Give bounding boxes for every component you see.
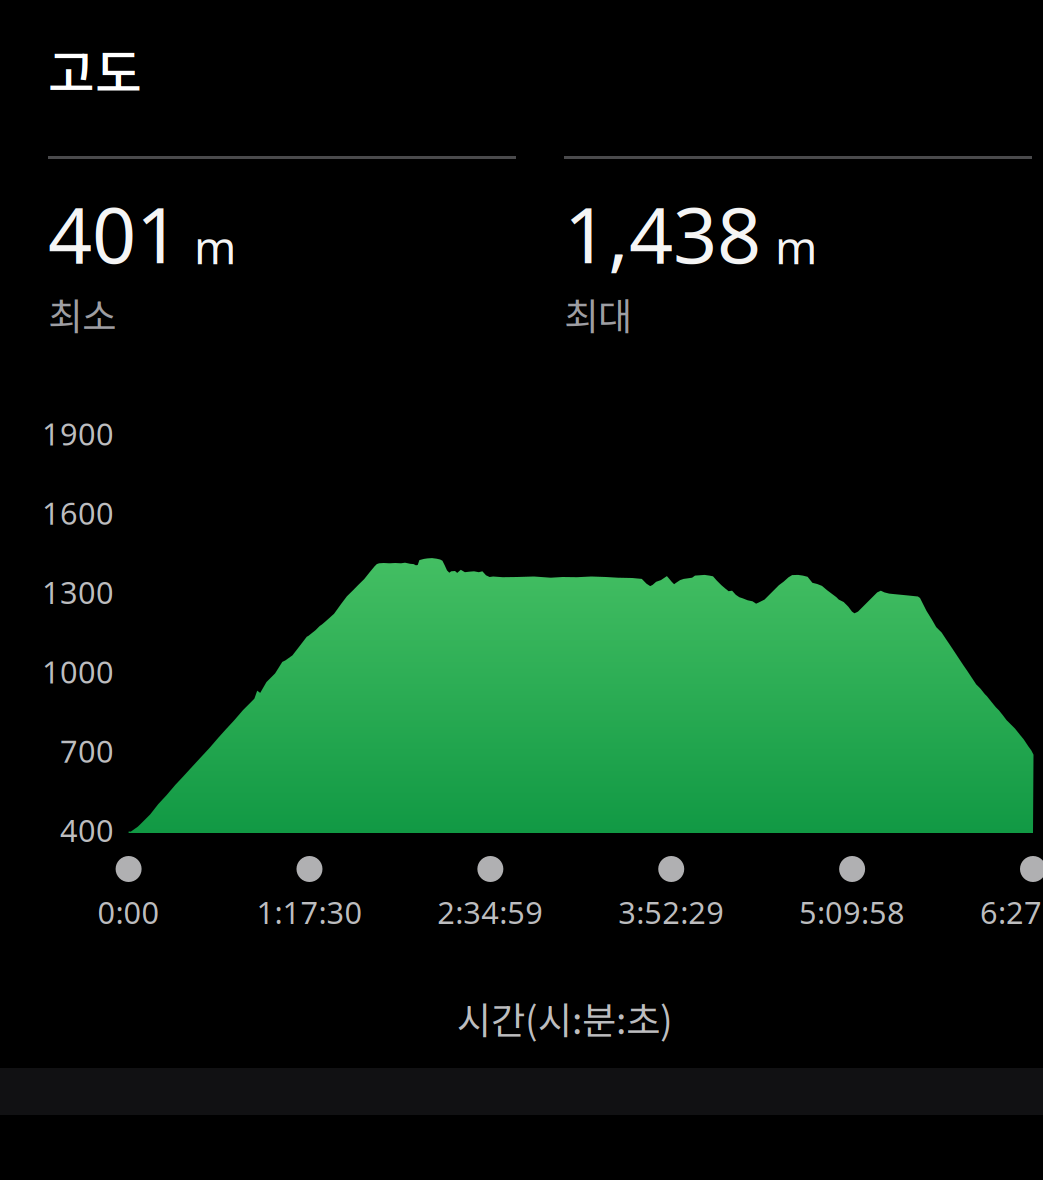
staticText: 0:00 (98, 892, 160, 932)
staticText: 고도 (48, 33, 142, 106)
staticText: 최소 (48, 287, 116, 341)
staticText: 1900 (42, 413, 114, 454)
staticText: m (194, 216, 236, 277)
staticText: 1:17:30 (256, 892, 362, 932)
staticText: 최대 (564, 287, 632, 341)
staticText: m (775, 216, 817, 277)
staticText: 2:34:59 (437, 892, 543, 932)
staticText: 1600 (42, 492, 114, 533)
staticText: 5:09:58 (799, 892, 905, 932)
staticText: 1,438 (564, 182, 761, 285)
staticText: 3:52:29 (618, 892, 724, 932)
staticText: 1300 (42, 572, 114, 612)
staticText: 400 (60, 810, 114, 850)
staticText: 6:27:29 (980, 892, 1043, 932)
staticText: 시간(시:분:초) (457, 991, 673, 1045)
staticText: 700 (60, 730, 114, 771)
staticText: 1000 (42, 651, 114, 692)
staticText: 401 (48, 182, 180, 285)
